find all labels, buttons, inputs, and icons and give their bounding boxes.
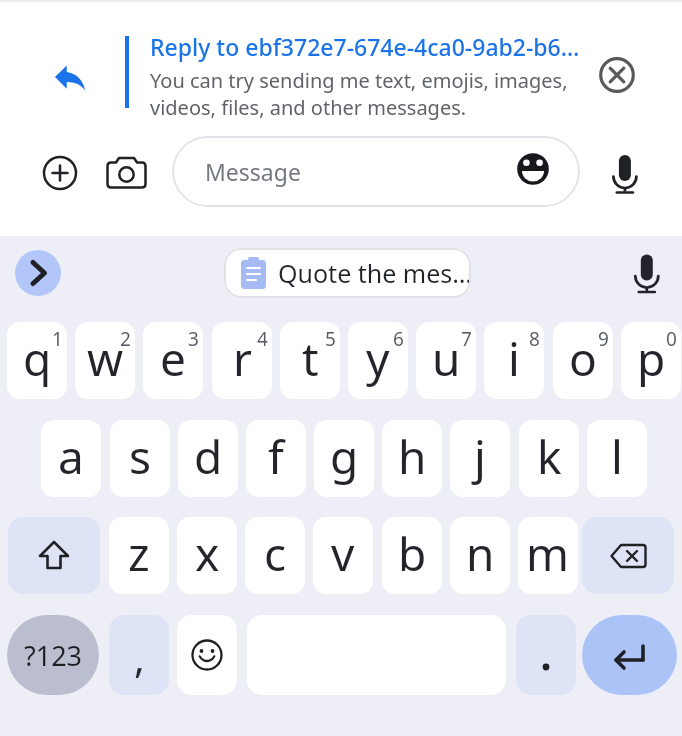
staticText: b <box>398 522 427 585</box>
staticText: q <box>23 327 52 390</box>
button[interactable]: ?123 <box>7 615 99 695</box>
staticText: 3 <box>188 326 199 352</box>
staticText: 0 <box>666 326 677 352</box>
button[interactable]: w <box>75 322 135 399</box>
staticText: i <box>508 327 520 390</box>
staticText: r <box>233 327 252 390</box>
staticText: t <box>302 327 319 390</box>
button[interactable] <box>516 615 576 695</box>
button[interactable]: u <box>416 322 476 399</box>
button[interactable]: q <box>7 322 67 399</box>
button[interactable]: f <box>246 420 306 497</box>
staticText: 1 <box>52 326 63 352</box>
staticText: videos, files, and other messages. <box>150 94 467 121</box>
staticText: h <box>398 425 427 488</box>
button[interactable] <box>42 155 78 191</box>
staticText: v <box>331 522 355 585</box>
button[interactable] <box>517 153 549 185</box>
button[interactable]: x <box>177 517 237 594</box>
staticText: m <box>526 522 570 585</box>
button[interactable] <box>8 517 100 594</box>
staticText: e <box>160 327 186 390</box>
button[interactable] <box>15 250 61 296</box>
staticText: k <box>537 425 562 488</box>
button[interactable] <box>625 249 669 297</box>
button[interactable] <box>602 150 646 198</box>
button[interactable]: h <box>382 420 442 497</box>
button[interactable]: Quote the mes… <box>224 248 471 298</box>
button[interactable]: v <box>313 517 373 594</box>
button[interactable] <box>106 153 148 193</box>
button[interactable] <box>50 57 90 97</box>
staticText: y <box>366 327 390 390</box>
button[interactable]: z <box>109 517 169 594</box>
button[interactable]: b <box>382 517 442 594</box>
button[interactable]: y <box>348 322 408 399</box>
staticText: d <box>194 425 223 488</box>
staticText: z <box>128 522 150 585</box>
button[interactable]: m <box>518 517 578 594</box>
button[interactable]: , <box>109 615 169 695</box>
button[interactable] <box>582 517 674 594</box>
staticText: Reply to ebf372e7-674e-4ca0-9ab2-b6… <box>150 31 580 62</box>
staticText: l <box>611 425 623 488</box>
staticText: c <box>264 522 287 585</box>
button[interactable]: e <box>143 322 203 399</box>
staticText: u <box>432 327 461 390</box>
staticText: 4 <box>257 326 268 352</box>
staticText: s <box>129 425 152 488</box>
button[interactable]: j <box>450 420 510 497</box>
staticText: o <box>569 327 597 390</box>
staticText: 5 <box>325 326 336 352</box>
staticText: f <box>268 425 284 488</box>
button[interactable]: g <box>314 420 374 497</box>
button[interactable] <box>598 56 636 94</box>
staticText: Quote the mes… <box>278 256 471 290</box>
staticText: You can try sending me text, emojis, ima… <box>150 67 568 94</box>
button[interactable]: c <box>245 517 305 594</box>
button[interactable]: l <box>587 420 647 497</box>
button[interactable]: r <box>212 322 272 399</box>
button[interactable]: a <box>41 420 101 497</box>
button[interactable]: s <box>110 420 170 497</box>
button[interactable] <box>582 615 677 695</box>
button[interactable]: d <box>178 420 238 497</box>
staticText: ?123 <box>24 637 83 674</box>
button[interactable]: p <box>621 322 681 399</box>
staticText: p <box>637 327 666 390</box>
staticText: n <box>466 522 495 585</box>
button[interactable]: t <box>280 322 340 399</box>
staticText: a <box>58 425 84 488</box>
staticText: 9 <box>598 326 609 352</box>
staticText: j <box>474 425 486 488</box>
button[interactable]: n <box>450 517 510 594</box>
staticText: 6 <box>393 326 404 352</box>
staticText: 2 <box>120 326 131 352</box>
staticText: x <box>195 522 220 585</box>
staticText: , <box>134 630 145 684</box>
staticText: 8 <box>529 326 540 352</box>
button[interactable]: k <box>519 420 579 497</box>
button[interactable]: Message <box>172 136 580 207</box>
staticText: Message <box>205 156 301 187</box>
staticText: 7 <box>461 326 472 352</box>
staticText: g <box>330 425 359 488</box>
button[interactable]: o <box>553 322 613 399</box>
staticText: w <box>87 327 124 390</box>
button[interactable] <box>177 615 237 695</box>
button[interactable]: i <box>484 322 544 399</box>
